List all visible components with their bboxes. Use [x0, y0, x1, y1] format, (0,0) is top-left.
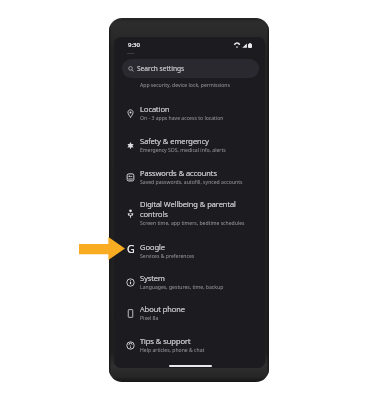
staticText: Help articles, phone & chat: [140, 347, 205, 354]
staticText: Saved passwords, autofill, synced accoun…: [140, 179, 243, 186]
staticText: 9:30: [128, 41, 140, 49]
staticText: Search settings: [137, 64, 185, 73]
staticText: Pixel 8a: [140, 315, 159, 322]
staticText: Safety & emergency: [140, 136, 209, 146]
staticText: Emergency SOS, medical info, alerts: [140, 147, 226, 154]
staticText: Passwords & accounts: [140, 168, 217, 178]
button[interactable]: Safety & emergency: [114, 132, 265, 164]
button[interactable]: G: [114, 238, 265, 270]
staticText: G: [127, 242, 135, 256]
button[interactable]: Tips & support: [114, 332, 265, 364]
staticText: Google: [140, 242, 165, 252]
button[interactable]: About phone: [114, 300, 265, 332]
button[interactable]: Location: [114, 100, 265, 132]
staticText: Languages, gestures, time, backup: [140, 284, 224, 291]
staticText: Digital Wellbeing & parental: [140, 199, 236, 209]
staticText: controls: [140, 209, 168, 219]
staticText: About phone: [140, 304, 185, 314]
staticText: Location: [140, 104, 170, 114]
button[interactable]: Search settings: [122, 59, 259, 78]
button[interactable]: Digital Wellbeing & parental: [114, 195, 265, 237]
staticText: App security, device lock, permissions: [140, 82, 230, 89]
staticText: System: [140, 273, 165, 283]
button[interactable]: System: [114, 269, 265, 301]
staticText: Screen time, app timers, bedtime schedul…: [140, 220, 245, 227]
staticText: Tips & support: [140, 336, 191, 346]
other: Pointer arrow to Google: [79, 237, 125, 260]
staticText: On - 3 apps have access to location: [140, 115, 224, 122]
button[interactable]: Passwords & accounts: [114, 164, 265, 196]
staticText: Services & preferences: [140, 253, 195, 260]
